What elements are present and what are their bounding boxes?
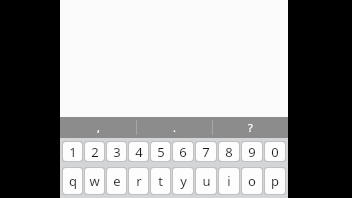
staticText: 4: [135, 143, 143, 161]
button[interactable]: p: [265, 168, 285, 194]
button[interactable]: 3: [107, 142, 126, 161]
staticText: 8: [225, 143, 233, 161]
staticText: ,: [97, 120, 100, 135]
staticText: r: [136, 172, 142, 190]
button[interactable]: 4: [129, 142, 148, 161]
button[interactable]: 8: [219, 142, 239, 161]
staticText: y: [180, 172, 187, 190]
button[interactable]: ?: [213, 117, 288, 138]
button[interactable]: i: [219, 168, 239, 194]
button[interactable]: 1: [63, 142, 82, 161]
button[interactable]: 0: [265, 142, 285, 161]
button[interactable]: 6: [173, 142, 193, 161]
button[interactable]: 5: [151, 142, 170, 161]
button[interactable]: 2: [85, 142, 104, 161]
staticText: 3: [113, 143, 121, 161]
staticText: i: [227, 172, 231, 190]
staticText: 0: [271, 143, 279, 161]
staticText: p: [271, 172, 279, 190]
button[interactable]: o: [242, 168, 262, 194]
staticText: 7: [202, 143, 210, 161]
staticText: e: [113, 172, 121, 190]
staticText: w: [89, 172, 100, 190]
staticText: 1: [69, 143, 77, 161]
staticText: 9: [248, 143, 256, 161]
button[interactable]: u: [196, 168, 216, 194]
button[interactable]: q: [63, 168, 82, 194]
button[interactable]: r: [129, 168, 148, 194]
button[interactable]: e: [107, 168, 126, 194]
staticText: .: [173, 120, 176, 135]
staticText: 6: [179, 143, 187, 161]
staticText: q: [69, 172, 77, 190]
button[interactable]: t: [151, 168, 170, 194]
button[interactable]: y: [173, 168, 193, 194]
staticText: u: [202, 172, 211, 190]
button[interactable]: ,: [60, 117, 136, 138]
staticText: ?: [248, 120, 253, 135]
staticText: 5: [157, 143, 165, 161]
staticText: o: [248, 172, 256, 190]
button[interactable]: 7: [196, 142, 216, 161]
button[interactable]: 9: [242, 142, 262, 161]
button[interactable]: w: [85, 168, 104, 194]
staticText: 2: [91, 143, 99, 161]
button[interactable]: .: [137, 117, 212, 138]
staticText: t: [158, 172, 163, 190]
